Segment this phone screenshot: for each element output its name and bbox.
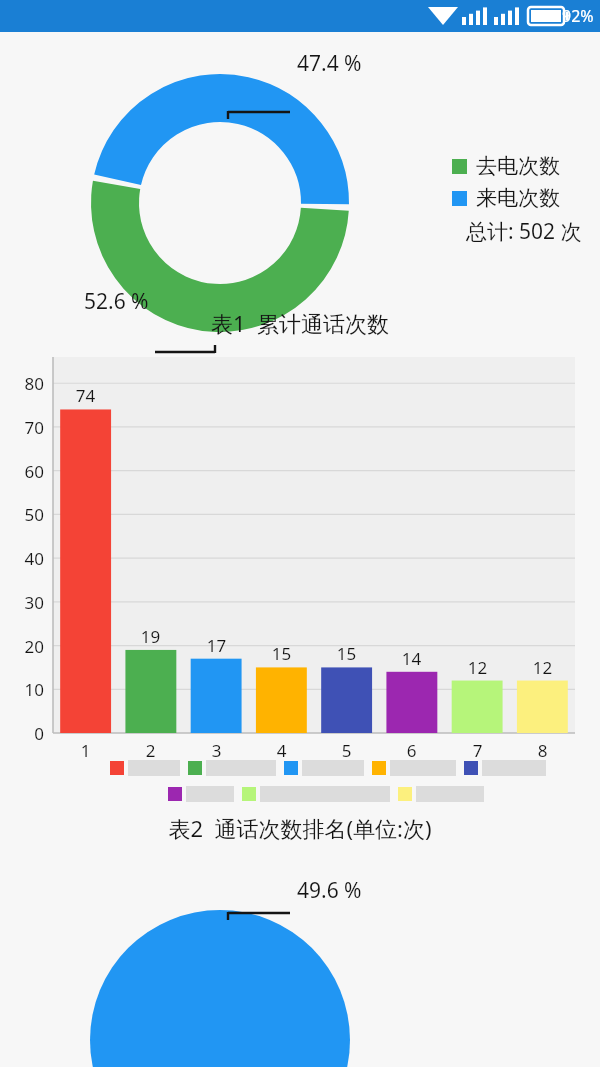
staticText: 3 <box>184 739 249 762</box>
staticText: 30 <box>2 591 44 614</box>
staticText: 50 <box>2 503 44 526</box>
staticText: 60 <box>2 460 44 483</box>
staticText: 2 <box>118 739 183 762</box>
staticText: 0 <box>2 722 44 745</box>
staticText: 来电次数 <box>476 185 560 211</box>
staticText: 8 <box>510 739 575 762</box>
button[interactable] <box>398 786 484 802</box>
staticText: 总计: 502 次 <box>466 217 582 246</box>
staticText: 74 <box>53 384 118 407</box>
staticText: 表1 累计通话次数 <box>211 308 390 338</box>
staticText: 12 <box>445 656 510 679</box>
staticText: 12 <box>510 656 575 679</box>
staticText: 去电次数 <box>476 153 560 179</box>
staticText: 80 <box>2 372 44 395</box>
staticText: 52.6 % <box>84 287 149 316</box>
staticText: 6 <box>379 739 444 762</box>
button[interactable] <box>110 760 180 776</box>
button[interactable] <box>464 760 546 776</box>
button[interactable] <box>188 760 276 776</box>
staticText: 19 <box>118 625 183 648</box>
staticText: 4 <box>249 739 314 762</box>
button[interactable]: Pie chart of total call counts <box>0 32 600 342</box>
button[interactable] <box>284 760 364 776</box>
staticText: 47.4 % <box>297 49 362 78</box>
staticText: 14 <box>379 647 444 670</box>
staticText: 49.6 % <box>297 876 362 905</box>
staticText: 20 <box>2 635 44 658</box>
staticText: 15 <box>249 642 314 665</box>
staticText: 40 <box>2 547 44 570</box>
other: Third pie chart, partially visible <box>0 865 600 935</box>
staticText: 7 <box>445 739 510 762</box>
staticText: 10 <box>2 678 44 701</box>
button[interactable] <box>372 760 456 776</box>
staticText: 70 <box>2 416 44 439</box>
staticText: 1 <box>53 739 118 762</box>
staticText: 92% <box>562 5 594 27</box>
button[interactable]: Bar chart of call count ranking <box>0 350 600 755</box>
button[interactable]: 去电次数 <box>452 153 568 246</box>
button[interactable] <box>168 786 234 802</box>
staticText: 15 <box>314 642 379 665</box>
button[interactable] <box>242 786 390 802</box>
staticText: 5 <box>314 739 379 762</box>
staticText: 表2 通话次数排名(单位:次) <box>0 813 600 843</box>
staticText: 17 <box>184 634 249 657</box>
other: Status bar: wifi, signal, battery 92 per… <box>0 0 600 32</box>
